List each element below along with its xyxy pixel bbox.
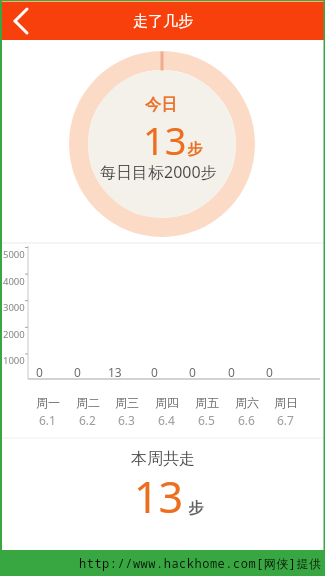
staticText: 6.6	[238, 412, 255, 428]
staticText: 13	[108, 364, 122, 380]
staticText: 周六	[235, 395, 259, 410]
staticText: 走了几步	[133, 12, 193, 31]
staticText: 13	[143, 114, 187, 166]
staticText: 0	[228, 364, 235, 380]
staticText: 周四	[155, 395, 179, 410]
staticText: 周三	[115, 395, 139, 410]
staticText: 6.7	[277, 412, 294, 428]
staticText: 6.3	[118, 412, 135, 428]
staticText: 本周共走	[131, 449, 195, 469]
staticText: 6.4	[158, 412, 175, 428]
staticText: 6.1	[39, 412, 56, 428]
staticText: 0	[36, 364, 43, 380]
staticText: http://www.hackhome.com[网侠]提供	[79, 555, 322, 571]
staticText: 周五	[195, 395, 219, 410]
staticText: 13	[134, 467, 184, 526]
staticText: 5000	[3, 248, 25, 261]
staticText: 1000	[3, 354, 25, 367]
staticText: 步	[188, 499, 203, 518]
staticText: 步	[187, 140, 202, 159]
staticText: 4000	[3, 275, 25, 288]
staticText: 3000	[3, 301, 25, 314]
staticText: 0	[151, 364, 158, 380]
staticText: 今日	[145, 95, 177, 115]
staticText: 2000	[3, 328, 25, 341]
staticText: 0	[266, 364, 273, 380]
button[interactable]	[0, 2, 42, 40]
staticText: 0	[74, 364, 81, 380]
staticText: 0	[189, 364, 196, 380]
staticText: 6.2	[79, 412, 96, 428]
staticText: 周二	[76, 395, 100, 410]
staticText: 周日	[274, 395, 298, 410]
staticText: 周一	[36, 395, 60, 410]
staticText: 6.5	[198, 412, 215, 428]
staticText: 每日目标2000步	[100, 161, 217, 183]
